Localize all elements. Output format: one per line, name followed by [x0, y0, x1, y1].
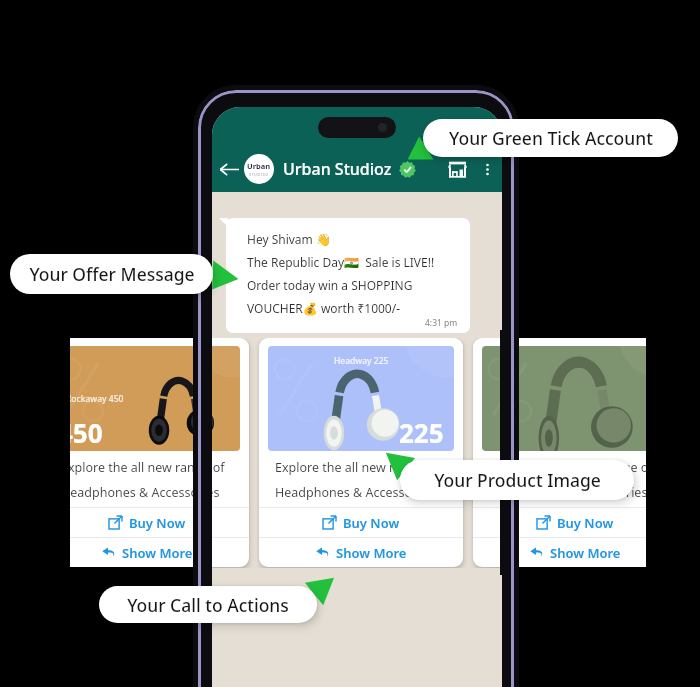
staticText: Your Offer Message [29, 262, 195, 286]
staticText: Show More [550, 544, 621, 562]
button[interactable]: Buy Now [473, 508, 646, 537]
staticText: Urban Studioz [283, 158, 392, 180]
button[interactable]: Show More [70, 538, 249, 567]
button[interactable]: More options [476, 158, 498, 180]
button[interactable]: Urban [244, 154, 274, 184]
staticText: Explore the all new range of [489, 459, 646, 476]
staticText: 4:31 pm [425, 317, 458, 329]
staticText: Buy Now [557, 514, 614, 532]
button[interactable]: Back [214, 154, 244, 184]
button[interactable]: Buy Now [259, 508, 463, 537]
staticText: VOUCHER💰 worth ₹1000/- [247, 300, 401, 316]
staticText: The Republic Day🇮🇳 Sale is LIVE!! [247, 254, 435, 270]
button[interactable]: Your Green Tick Account [423, 119, 678, 157]
staticText: 225 [399, 415, 444, 450]
staticText: 450 [70, 415, 103, 450]
staticText: Urban [247, 161, 271, 171]
staticText: Headphones & Accessories [70, 484, 220, 501]
button[interactable]: Your Product Image [400, 460, 634, 500]
staticText: Your Call to Actions [127, 593, 289, 617]
staticText: Headway 225 [334, 355, 389, 367]
staticText: Show More [336, 544, 407, 562]
button[interactable]: Your Call to Actions [99, 586, 317, 623]
button[interactable]: Store [444, 156, 470, 182]
staticText: Your Product Image [434, 468, 601, 492]
staticText: Headphones & Accessories [489, 484, 646, 501]
staticText: Headphones & Accessories [275, 484, 434, 501]
staticText: Explore the all new range of [275, 459, 439, 476]
staticText: Explore the all new range of [70, 459, 225, 476]
staticText: Buy Now [343, 514, 400, 532]
staticText: Your Green Tick Account [449, 126, 653, 150]
staticText: Buy Now [129, 514, 186, 532]
button[interactable]: Your Offer Message [10, 254, 213, 294]
button[interactable]: Buy Now [70, 508, 249, 537]
staticText: Order today win a SHOPPING [247, 277, 413, 293]
staticText: Rockaway 450 [70, 393, 124, 405]
staticText: STUDIOZ [249, 172, 269, 177]
button[interactable]: Show More [259, 538, 463, 567]
button[interactable]: Show More [473, 538, 646, 567]
staticText: Show More [122, 544, 193, 562]
staticText: Hey Shivam 👋 [247, 231, 331, 247]
